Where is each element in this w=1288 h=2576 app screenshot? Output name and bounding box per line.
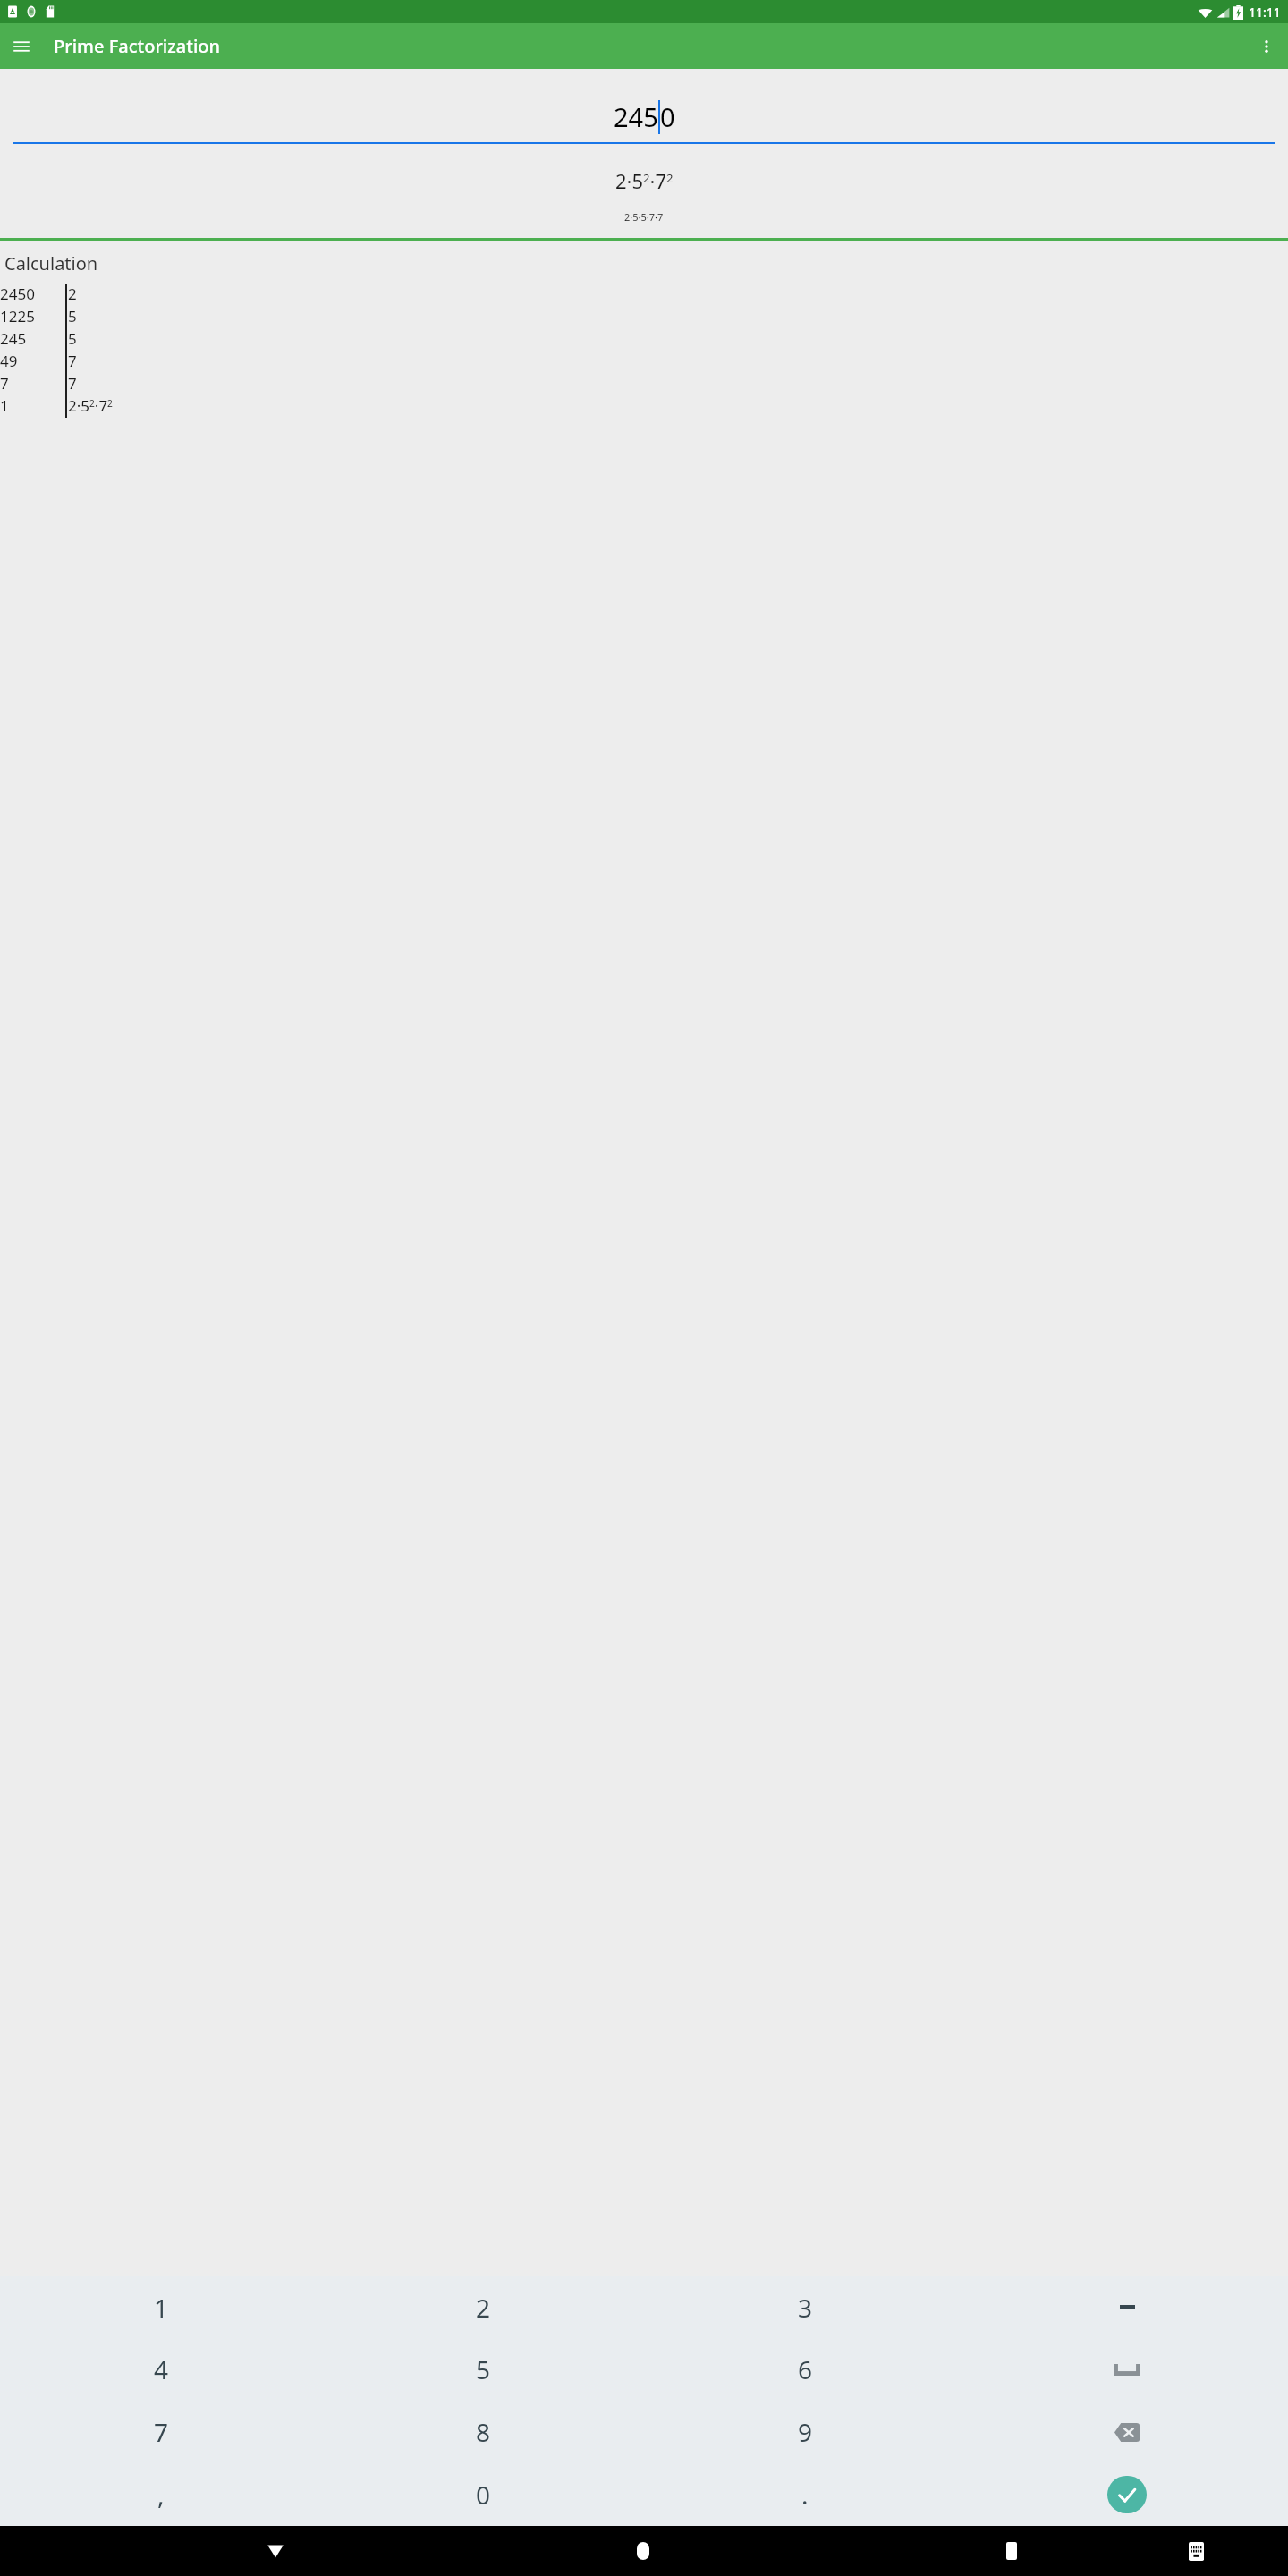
staticText: 7	[68, 351, 77, 371]
button[interactable]: Backspace	[966, 2401, 1288, 2463]
staticText: 2·52·72	[68, 395, 113, 416]
button[interactable]: 9	[644, 2401, 966, 2463]
staticText: ,	[157, 2478, 165, 2512]
staticText: 2·5·5·7·7	[624, 210, 664, 224]
staticText: 7	[154, 2415, 169, 2449]
button[interactable]: 245	[14, 97, 1274, 135]
button[interactable]: 3	[644, 2276, 966, 2338]
staticText: 5	[68, 306, 77, 326]
staticText: 2	[68, 284, 77, 304]
staticText: 5	[476, 2352, 491, 2386]
button[interactable]: Open navigation menu	[0, 25, 43, 68]
staticText: 3	[798, 2291, 813, 2325]
staticText: 2450	[0, 284, 35, 304]
staticText: 1225	[0, 306, 35, 326]
staticText: Prime Factorization	[54, 34, 221, 58]
staticText: 6	[798, 2352, 813, 2386]
staticText: 8	[476, 2415, 491, 2449]
staticText: .	[801, 2478, 809, 2512]
button[interactable]: .	[644, 2463, 966, 2526]
button[interactable]: Recent apps	[919, 2526, 1104, 2576]
button[interactable]: More options	[1245, 25, 1288, 68]
button[interactable]: 6	[644, 2338, 966, 2401]
staticText: 1	[154, 2291, 169, 2325]
button[interactable]: Back	[183, 2526, 367, 2576]
staticText: 1	[0, 395, 9, 416]
staticText: 11:11	[1249, 4, 1281, 21]
button[interactable]: 7	[0, 2401, 322, 2463]
staticText: 7	[0, 373, 9, 394]
staticText: 7	[68, 373, 77, 394]
staticText: 5	[68, 328, 77, 349]
staticText: 4	[154, 2352, 169, 2386]
button[interactable]: 2	[322, 2276, 644, 2338]
button[interactable]: Home	[551, 2526, 735, 2576]
button[interactable]: Minus	[966, 2276, 1288, 2338]
button[interactable]: 0	[322, 2463, 644, 2526]
staticText: Calculation	[4, 251, 98, 275]
staticText: 245	[614, 99, 658, 134]
staticText: 245	[0, 328, 27, 349]
button[interactable]: 4	[0, 2338, 322, 2401]
button[interactable]: 8	[322, 2401, 644, 2463]
staticText: 2·52·72	[615, 167, 674, 194]
staticText: 0	[476, 2478, 491, 2512]
staticText: 2	[476, 2291, 491, 2325]
button[interactable]: Confirm	[966, 2463, 1288, 2526]
button[interactable]: 5	[322, 2338, 644, 2401]
button[interactable]: Space	[966, 2338, 1288, 2401]
button[interactable]: Switch keyboard	[1104, 2526, 1288, 2576]
staticText: 0	[660, 99, 675, 134]
staticText: 9	[798, 2415, 813, 2449]
staticText: 49	[0, 351, 18, 371]
button[interactable]: 1	[0, 2276, 322, 2338]
button[interactable]: ,	[0, 2463, 322, 2526]
